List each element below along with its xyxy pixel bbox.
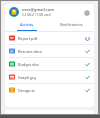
staticText: Report.pdf (18, 36, 38, 41)
button[interactable]: Design.ai (5, 84, 94, 96)
staticText: Resume.docx (18, 49, 42, 54)
staticText: 3.2 GB of 15 GB used (22, 13, 51, 17)
staticText: Design.ai (18, 88, 35, 93)
button[interactable]: Resume.docx (5, 45, 94, 57)
button[interactable]: Notifications (49, 19, 94, 31)
staticText: Budget.xlsx (18, 62, 39, 67)
staticText: user@gmail.com (22, 7, 55, 12)
button[interactable]: Report.pdf (5, 32, 94, 44)
button[interactable]: Settings (82, 8, 91, 17)
staticText: Notifications (60, 22, 83, 27)
button[interactable]: Budget.xlsx (5, 58, 94, 70)
staticText: Graph.jpg (18, 75, 36, 80)
staticText: Activity (20, 22, 34, 27)
button[interactable]: Activity (5, 19, 49, 31)
button[interactable]: Graph.jpg (5, 71, 94, 83)
